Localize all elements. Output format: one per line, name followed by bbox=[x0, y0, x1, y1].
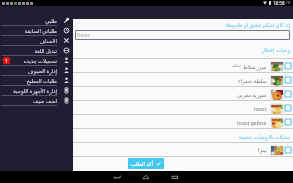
button[interactable]: Select بيتزا bbox=[285, 147, 291, 153]
button[interactable]: وجبات إفطار bbox=[73, 40, 293, 59]
staticText: إدارة الضيوف bbox=[0, 67, 57, 74]
staticText: شوربة مغربي bbox=[237, 91, 267, 98]
staticText: طلبات المطبخ bbox=[0, 77, 57, 84]
staticText: الاصناف bbox=[0, 38, 57, 44]
staticText: سلطة bbox=[232, 64, 241, 68]
button[interactable]: Home bbox=[140, 171, 152, 183]
staticText: تبديل اللغة bbox=[0, 47, 57, 54]
button[interactable]: سلطة خضراء bbox=[73, 73, 293, 87]
button[interactable]: Select ميزر سلاط bbox=[285, 63, 291, 69]
button[interactable]: Notes bbox=[75, 30, 290, 40]
staticText: اضف ضيف bbox=[0, 97, 57, 104]
staticText: 18:58 bbox=[273, 0, 285, 6]
button[interactable]: طلبي bbox=[0, 16, 73, 25]
button[interactable]: Select شوربة مغربي bbox=[285, 91, 291, 97]
button[interactable]: طلبات المطبخ bbox=[0, 76, 73, 85]
staticText: طلباتي السابقة bbox=[0, 27, 57, 34]
button[interactable]: مقبلات & وجبات خفيفة bbox=[73, 129, 293, 143]
staticText: toast gebna bbox=[237, 119, 267, 126]
button[interactable]: إدارة الضيوف bbox=[0, 66, 73, 75]
staticText: ميزر سلاط bbox=[243, 63, 267, 70]
staticText: Notes bbox=[77, 32, 90, 38]
staticText: مقبلات & وجبات خفيفة bbox=[73, 133, 290, 140]
button[interactable]: Recents bbox=[169, 171, 181, 183]
button[interactable]: Select toast bbox=[285, 105, 291, 111]
button[interactable]: شوربة مغربي bbox=[73, 87, 293, 101]
staticText: 1 bbox=[5, 58, 8, 64]
button[interactable]: طلباتي السابقة bbox=[0, 26, 73, 35]
button[interactable]: Back bbox=[111, 171, 123, 183]
button[interactable]: إدارة الأجهزة اللوحية bbox=[0, 86, 73, 95]
button[interactable]: سلطة bbox=[73, 59, 293, 73]
staticText: وجبات إفطار bbox=[73, 46, 290, 53]
button[interactable]: 1 bbox=[0, 56, 73, 65]
staticText: طلبي bbox=[0, 18, 57, 24]
staticText: PM bbox=[286, 1, 291, 5]
staticText: toast bbox=[254, 105, 267, 112]
staticText: أكد الطلب bbox=[131, 160, 154, 167]
button[interactable]: بيتزا bbox=[73, 143, 293, 157]
staticText: تسجيلات جديده bbox=[10, 57, 57, 64]
button[interactable]: أكد الطلب bbox=[128, 158, 164, 169]
staticText: إدارة الأجهزة اللوحية bbox=[0, 87, 57, 94]
button[interactable]: Select toast gebna bbox=[285, 119, 291, 125]
button[interactable]: اضف ضيف bbox=[0, 96, 73, 105]
button[interactable]: تبديل اللغة bbox=[0, 46, 73, 55]
button[interactable]: Select سلطة خضراء bbox=[285, 77, 291, 83]
staticText: بيتزا bbox=[258, 147, 267, 153]
button[interactable]: الاصناف bbox=[0, 36, 73, 45]
staticText: سلطة خضراء bbox=[238, 77, 267, 84]
staticText: إذا كان لديكم تعليق او ملحوظة bbox=[73, 21, 290, 28]
button[interactable]: toast bbox=[73, 101, 293, 115]
button[interactable]: toast gebna bbox=[73, 115, 293, 129]
